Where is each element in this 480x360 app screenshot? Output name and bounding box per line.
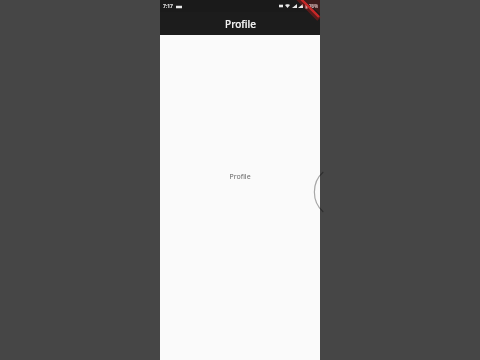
staticText: 76% — [309, 3, 318, 9]
staticText: Profile — [229, 172, 251, 182]
staticText: Profile — [225, 17, 256, 31]
staticText: 7:17 — [163, 3, 173, 10]
